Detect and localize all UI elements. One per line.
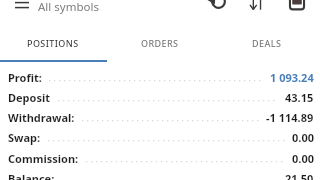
button[interactable]: Profit: — [0, 67, 320, 88]
staticText: 1 093.24 — [270, 70, 314, 85]
button[interactable]: Deposit — [0, 87, 320, 108]
staticText: 43.15 — [285, 90, 314, 105]
staticText: 21.50 — [285, 171, 314, 180]
staticText: Swap: — [8, 130, 41, 145]
button[interactable]: Menu — [7, 0, 37, 12]
staticText: POSITIONS — [27, 37, 79, 49]
staticText: Balance: — [8, 171, 55, 180]
button[interactable]: POSITIONS — [0, 29, 106, 57]
button[interactable]: Sort — [245, 0, 269, 12]
staticText: All symbols — [38, 0, 99, 15]
button[interactable]: Chart — [285, 0, 309, 13]
staticText: 0.00 — [292, 151, 314, 166]
button[interactable]: Refresh — [205, 0, 231, 11]
button[interactable]: Commission: — [0, 148, 320, 169]
staticText: -1 114.89 — [266, 110, 314, 125]
staticText: Profit: — [8, 70, 42, 85]
button[interactable]: Balance: — [0, 168, 320, 180]
staticText: 0.00 — [292, 130, 314, 145]
button[interactable]: Withdrawal: — [0, 107, 320, 128]
staticText: Withdrawal: — [8, 110, 75, 125]
button[interactable]: Swap: — [0, 127, 320, 148]
staticText: ORDERS — [141, 37, 179, 49]
staticText: DEALS — [252, 37, 282, 49]
staticText: Commission: — [8, 151, 79, 166]
button[interactable]: ORDERS — [106, 29, 213, 57]
button[interactable]: DEALS — [213, 29, 320, 57]
staticText: Deposit — [8, 90, 51, 105]
